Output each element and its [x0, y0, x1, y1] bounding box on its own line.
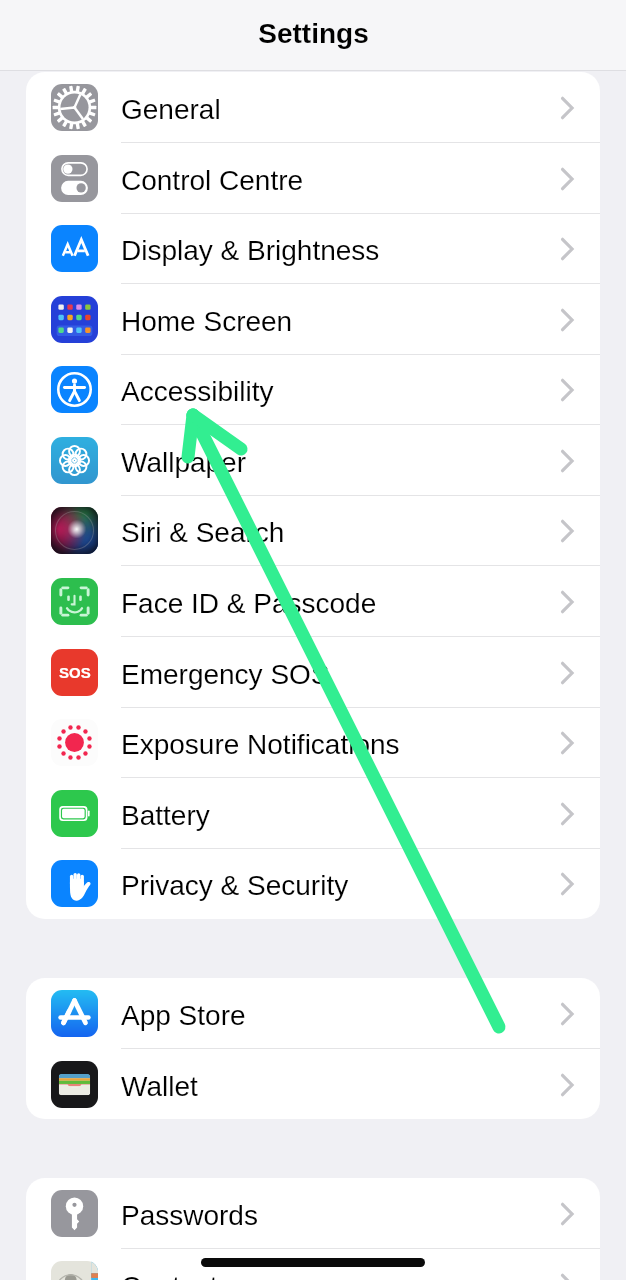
button[interactable]: Display & Brightness — [26, 213, 600, 284]
button[interactable]: SOS — [26, 637, 600, 708]
staticText: Battery — [121, 800, 210, 831]
staticText: General — [121, 94, 221, 125]
staticText: Control Centre — [121, 165, 304, 196]
button[interactable]: Passwords — [26, 1178, 600, 1249]
staticText: Settings — [258, 18, 369, 49]
staticText: Contacts — [121, 1271, 232, 1280]
staticText: Siri & Search — [121, 517, 285, 548]
button[interactable]: Wallpaper — [26, 425, 600, 496]
button[interactable]: Accessibility — [26, 354, 600, 425]
button[interactable]: Contacts — [26, 1249, 600, 1280]
staticText: Accessibility — [121, 376, 274, 407]
staticText: Passwords — [121, 1200, 258, 1231]
button[interactable]: Wallet — [26, 1049, 600, 1119]
staticText: SOS — [59, 664, 91, 681]
button[interactable]: Siri & Search — [26, 495, 600, 566]
staticText: Privacy & Security — [121, 870, 349, 901]
button[interactable]: General — [26, 72, 600, 143]
button[interactable]: Home Screen — [26, 284, 600, 355]
staticText: Display & Brightness — [121, 235, 380, 266]
button[interactable]: Face ID & Passcode — [26, 566, 600, 637]
staticText: Emergency SOS — [121, 659, 330, 690]
staticText: Wallet — [121, 1071, 198, 1102]
staticText: Exposure Notifications — [121, 729, 400, 760]
staticText: Face ID & Passcode — [121, 588, 377, 619]
button[interactable]: Battery — [26, 778, 600, 849]
staticText: Wallpaper — [121, 447, 247, 478]
button[interactable]: Control Centre — [26, 143, 600, 214]
button[interactable]: Exposure Notifications — [26, 707, 600, 778]
staticText: App Store — [121, 1000, 246, 1031]
staticText: Home Screen — [121, 306, 293, 337]
button[interactable]: App Store — [26, 978, 600, 1049]
button[interactable]: Privacy & Security — [26, 848, 600, 919]
